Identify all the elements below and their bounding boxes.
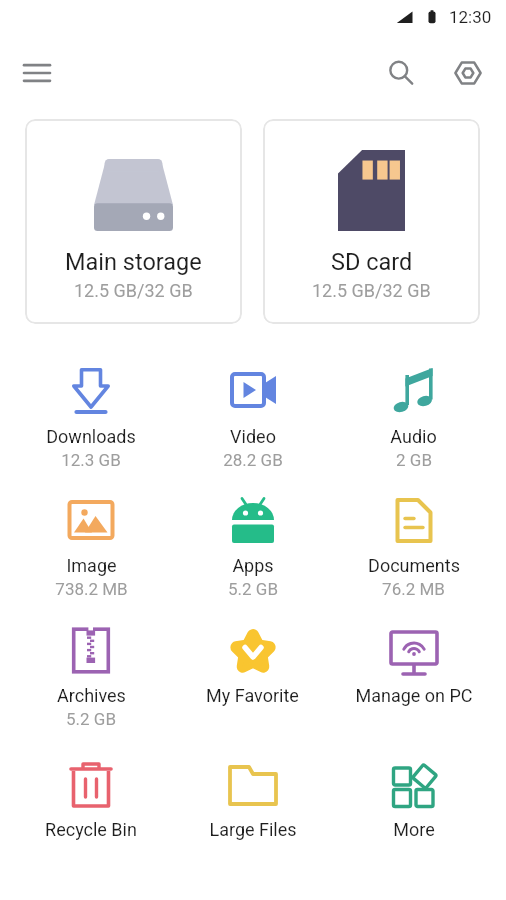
staticText: SD card [331, 248, 413, 276]
staticText: Documents [368, 555, 460, 576]
staticText: 2 GB [396, 450, 432, 469]
staticText: More [393, 819, 435, 840]
staticText: 28.2 GB [223, 450, 283, 469]
button[interactable]: Menu [14, 50, 60, 96]
button[interactable]: More [333, 760, 494, 862]
button[interactable]: My Favorite [172, 626, 333, 728]
staticText: 12.3 GB [61, 450, 121, 469]
button[interactable]: Recycle Bin [10, 760, 172, 862]
staticText: 12:30 [449, 7, 492, 27]
staticText: Audio [390, 426, 437, 447]
staticText: Video [230, 426, 276, 447]
button[interactable]: Audio [333, 367, 494, 469]
staticText: My Favorite [206, 685, 299, 706]
button[interactable]: Main storage [25, 119, 242, 324]
staticText: 5.2 GB [66, 709, 116, 728]
button[interactable]: Image [10, 496, 172, 598]
staticText: Downloads [46, 426, 136, 447]
staticText: Apps [232, 555, 274, 576]
staticText: Manage on PC [355, 685, 473, 706]
button[interactable]: Archives [10, 626, 172, 728]
button[interactable]: Downloads [10, 367, 172, 469]
button[interactable]: SD card [263, 119, 480, 324]
button[interactable]: Apps [172, 496, 333, 598]
staticText: 5.2 GB [228, 579, 278, 598]
staticText: Image [66, 555, 117, 576]
button[interactable]: Video [172, 367, 333, 469]
staticText: 12.5 GB/32 GB [312, 280, 431, 301]
staticText: Archives [57, 685, 126, 706]
button[interactable]: Large Files [172, 760, 333, 862]
button[interactable]: Search [378, 50, 424, 96]
button[interactable]: Documents [333, 496, 494, 598]
staticText: 738.2 MB [55, 579, 128, 598]
staticText: 76.2 MB [382, 579, 445, 598]
staticText: Main storage [65, 248, 202, 276]
staticText: Large Files [209, 819, 297, 840]
staticText: 12.5 GB/32 GB [74, 280, 193, 301]
button[interactable]: Manage on PC [333, 626, 494, 728]
button[interactable]: Settings [445, 50, 491, 96]
staticText: Recycle Bin [45, 819, 137, 840]
